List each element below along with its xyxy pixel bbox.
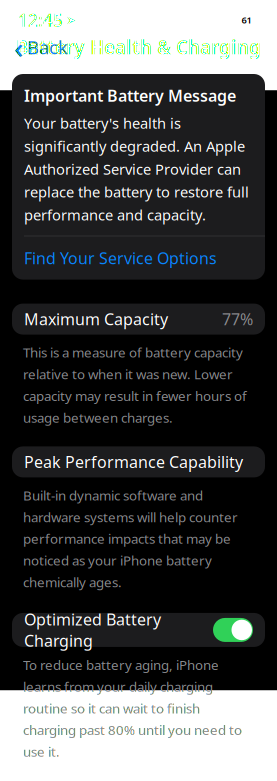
staticText: To reduce battery aging, iPhone learns f… (23, 656, 242, 760)
staticText: 61 (241, 14, 251, 26)
button[interactable]: Maximum Capacity (12, 304, 265, 335)
button[interactable]: ‹ (4, 23, 78, 70)
staticText: This is a measure of battery capacity re… (23, 344, 247, 426)
staticText: Back (27, 35, 68, 59)
button[interactable]: Optimized Battery Charging toggle, on (213, 618, 253, 642)
staticText: 77% (222, 308, 253, 330)
staticText: 12:45 (18, 8, 63, 31)
staticText: ‹ (14, 27, 24, 66)
staticText: Find Your Service Options (24, 247, 217, 268)
staticText: ➤ (66, 13, 76, 27)
staticText: Maximum Capacity (24, 308, 168, 330)
staticText: Optimized Battery Charging (24, 609, 161, 651)
button[interactable]: Peak Performance Capability (12, 446, 265, 477)
staticText: Peak Performance Capability (24, 451, 243, 472)
staticText: Important Battery Message (24, 85, 236, 106)
staticText: Battery Health & Charging (16, 35, 261, 59)
staticText: Built-in dynamic software and hardware s… (23, 486, 238, 591)
staticText: Your battery's health is significantly d… (24, 113, 249, 225)
button[interactable]: Find Your Service Options (12, 236, 265, 279)
